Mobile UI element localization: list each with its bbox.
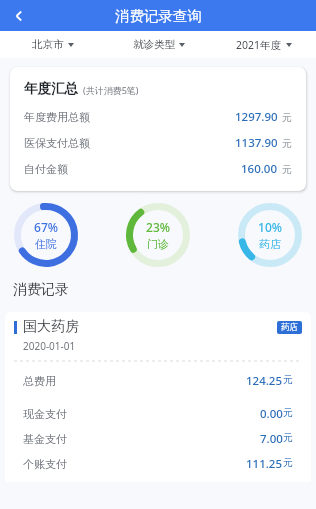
staticText: 元: [282, 163, 292, 176]
staticText: 124.25: [246, 373, 283, 389]
staticText: 23%: [146, 219, 170, 235]
button[interactable]: 国大药房: [5, 312, 311, 482]
staticText: (共计消费5笔): [83, 84, 139, 96]
staticText: 门诊: [147, 237, 169, 251]
staticText: 国大药房: [23, 318, 79, 336]
button[interactable]: 北京市: [0, 31, 106, 58]
staticText: 元: [283, 406, 293, 419]
staticText: 2021年度: [236, 38, 282, 52]
staticText: 消费记录: [13, 281, 69, 299]
button[interactable]: 2021年度: [211, 31, 316, 58]
staticText: 1297.90: [235, 109, 278, 125]
staticText: 总费用: [23, 374, 56, 388]
staticText: 1137.90: [235, 135, 278, 151]
staticText: 药店: [281, 322, 298, 333]
staticText: 元: [283, 431, 293, 444]
staticText: 7.00: [260, 431, 283, 447]
staticText: 医保支付总额: [24, 136, 90, 150]
button[interactable]: Back: [0, 0, 38, 31]
staticText: 个账支付: [23, 457, 67, 471]
button[interactable]: 67%: [14, 203, 78, 267]
staticText: 就诊类型: [133, 38, 175, 51]
staticText: 住院: [35, 237, 57, 251]
staticText: 自付金额: [24, 162, 68, 176]
staticText: 基金支付: [23, 432, 67, 446]
staticText: 160.00: [241, 161, 278, 177]
button[interactable]: 就诊类型: [106, 31, 211, 58]
staticText: 10%: [258, 219, 282, 235]
staticText: 2020-01-01: [23, 339, 76, 353]
button[interactable]: 10%: [238, 203, 302, 267]
staticText: 67%: [34, 219, 58, 235]
staticText: 111.25: [246, 456, 283, 472]
staticText: 年度费用总额: [24, 110, 90, 124]
staticText: 消费记录查询: [115, 7, 202, 25]
staticText: 现金支付: [23, 407, 67, 421]
staticText: 0.00: [260, 406, 283, 422]
staticText: 北京市: [32, 38, 64, 51]
staticText: 元: [283, 456, 293, 469]
button[interactable]: 23%: [126, 203, 190, 267]
staticText: 年度汇总: [24, 80, 78, 97]
staticText: 元: [282, 137, 292, 150]
staticText: 元: [282, 111, 292, 124]
staticText: 药店: [259, 237, 281, 251]
staticText: 元: [283, 373, 293, 386]
